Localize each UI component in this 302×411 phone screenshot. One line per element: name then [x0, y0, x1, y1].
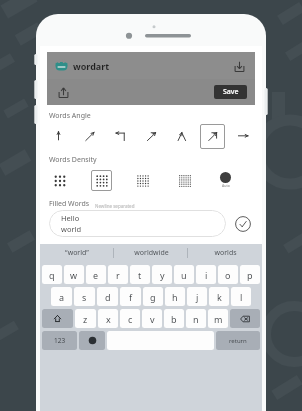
staticText: g — [150, 291, 156, 303]
button[interactable]: c — [120, 309, 140, 328]
staticText: “world” — [65, 248, 89, 258]
staticText: w — [70, 269, 78, 281]
button[interactable]: w — [64, 265, 84, 284]
staticText: q — [49, 269, 55, 281]
button[interactable]: Words density 6 — [174, 170, 195, 191]
staticText: e — [93, 269, 99, 281]
button[interactable]: worldwide — [114, 244, 188, 262]
staticText: Auto — [222, 183, 230, 188]
staticText: l — [240, 291, 243, 303]
staticText: Newline separated — [95, 203, 135, 209]
staticText: t — [138, 269, 142, 281]
staticText: m — [214, 313, 223, 325]
button[interactable]: Word angle option 6 — [200, 124, 225, 149]
button[interactable]: return — [216, 331, 260, 350]
staticText: Save — [223, 87, 239, 97]
staticText: Filled Words — [49, 199, 90, 209]
staticText: worlds — [214, 248, 237, 258]
button[interactable]: z — [75, 309, 96, 328]
button[interactable]: v — [142, 309, 162, 328]
staticText: wordart — [73, 60, 110, 72]
button[interactable]: l — [231, 287, 251, 306]
staticText: return — [229, 337, 247, 345]
staticText: worldwide — [134, 248, 169, 258]
button[interactable]: Words density 5 — [132, 170, 153, 191]
button[interactable]: Word angle option 2 — [77, 124, 102, 149]
button[interactable]: f — [120, 287, 141, 306]
button[interactable]: x — [98, 309, 118, 328]
staticText: o — [225, 269, 231, 281]
button[interactable]: Word angle option 1 — [46, 124, 71, 149]
button[interactable]: Backspace — [230, 309, 260, 328]
button[interactable]: Words density 4 — [91, 170, 112, 191]
staticText: h — [172, 291, 178, 303]
button[interactable]: Shift — [42, 309, 73, 328]
button[interactable]: u — [174, 265, 194, 284]
button[interactable]: Share — [55, 84, 71, 100]
button[interactable]: Word angle option 5 — [169, 124, 194, 149]
button[interactable]: j — [187, 287, 207, 306]
staticText: d — [105, 291, 111, 303]
button[interactable]: worlds — [188, 244, 262, 262]
staticText: c — [128, 313, 133, 325]
button[interactable]: k — [209, 287, 229, 306]
button[interactable]: i — [196, 265, 216, 284]
button[interactable]: Emoji — [79, 331, 105, 350]
button[interactable]: b — [164, 309, 184, 328]
staticText: b — [171, 313, 177, 325]
staticText: Words Angle — [49, 111, 91, 121]
button[interactable]: p — [240, 265, 260, 284]
staticText: z — [83, 313, 88, 325]
staticText: x — [106, 313, 111, 325]
staticText: i — [205, 269, 208, 281]
button[interactable]: Word angle option 4 — [139, 124, 164, 149]
staticText: y — [160, 269, 165, 281]
button[interactable]: Apply words — [233, 214, 253, 234]
staticText: v — [150, 313, 155, 325]
button[interactable]: Auto density — [215, 172, 236, 188]
button[interactable]: y — [152, 265, 172, 284]
button[interactable]: Download — [231, 58, 247, 74]
staticText: u — [181, 269, 187, 281]
button[interactable]: e — [86, 265, 106, 284]
button[interactable]: q — [42, 265, 62, 284]
button[interactable]: o — [218, 265, 238, 284]
staticText: s — [82, 291, 87, 303]
button[interactable]: n — [186, 309, 206, 328]
button[interactable]: g — [143, 287, 163, 306]
button[interactable]: h — [165, 287, 185, 306]
staticText: j — [196, 291, 199, 303]
button[interactable]: m — [208, 309, 228, 328]
button[interactable]: Words density 3 — [49, 170, 70, 191]
staticText: 123 — [54, 336, 66, 345]
staticText: r — [116, 269, 120, 281]
button[interactable]: d — [97, 287, 118, 306]
staticText: k — [217, 291, 222, 303]
staticText: n — [193, 313, 199, 325]
staticText: f — [129, 291, 133, 303]
button[interactable]: s — [74, 287, 95, 306]
button[interactable]: Numbers — [42, 331, 77, 350]
button[interactable]: t — [130, 265, 150, 284]
button[interactable]: a — [51, 287, 72, 306]
button[interactable]: r — [108, 265, 128, 284]
staticText: world — [61, 224, 82, 234]
button[interactable]: Save — [214, 85, 247, 99]
button[interactable]: “world” — [40, 244, 114, 262]
staticText: Hello — [61, 213, 80, 223]
staticText: p — [247, 269, 253, 281]
button[interactable]: Hello — [49, 210, 226, 237]
staticText: a — [59, 291, 65, 303]
button[interactable]: Word angle option 7 — [231, 124, 256, 149]
staticText: Words Density — [49, 155, 97, 165]
button[interactable]: Word angle option 3 — [108, 124, 133, 149]
